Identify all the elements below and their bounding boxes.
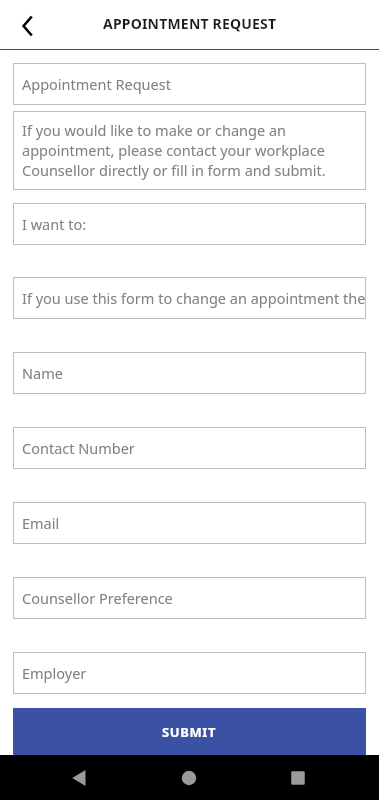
staticText: If you would like to make or change an a… (22, 120, 358, 180)
staticText: Counsellor Preference (22, 588, 173, 608)
button[interactable]: Employer (13, 652, 366, 694)
button[interactable]: Email (13, 502, 366, 544)
button[interactable]: Back (10, 9, 44, 43)
staticText: APPOINTMENT REQUEST (103, 14, 277, 33)
staticText: Email (22, 513, 60, 533)
staticText: I want to: (22, 214, 87, 234)
staticText: Employer (22, 663, 87, 683)
button[interactable]: Appointment Request (13, 63, 366, 105)
button[interactable]: Name (13, 352, 366, 394)
button[interactable]: Recent apps (275, 760, 321, 796)
button[interactable]: I want to: (13, 203, 366, 245)
button[interactable]: SUBMIT (13, 708, 366, 755)
staticText: Name (22, 363, 63, 383)
staticText: If you use this form to change an appoin… (22, 288, 366, 308)
button[interactable]: Home (166, 760, 212, 796)
button[interactable]: Back (56, 760, 102, 796)
button[interactable]: Contact Number (13, 427, 366, 469)
button[interactable]: If you would like to make or change an a… (13, 111, 366, 190)
button[interactable]: If you use this form to change an appoin… (13, 277, 366, 319)
button[interactable]: Counsellor Preference (13, 577, 366, 619)
staticText: Contact Number (22, 438, 135, 458)
staticText: Appointment Request (22, 74, 171, 94)
staticText: SUBMIT (162, 723, 217, 741)
